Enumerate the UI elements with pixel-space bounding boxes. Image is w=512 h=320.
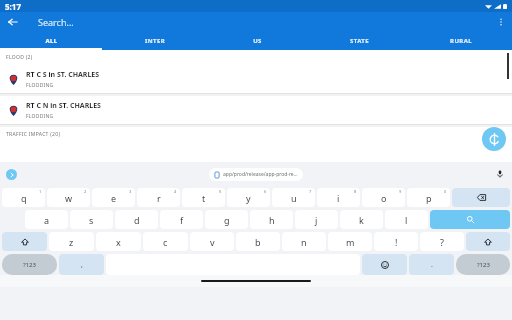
staticText: FLOOD (2) bbox=[6, 54, 33, 61]
staticText: o bbox=[381, 192, 387, 204]
staticText: 0 bbox=[444, 189, 447, 194]
staticText: y bbox=[246, 192, 251, 204]
staticText: TRAFFIC IMPACT (20) bbox=[6, 131, 61, 138]
staticText: 6 bbox=[264, 189, 267, 194]
staticText: 3 bbox=[129, 189, 132, 194]
staticText: x bbox=[116, 236, 121, 248]
staticText: ? bbox=[440, 236, 444, 248]
staticText: l bbox=[405, 214, 408, 226]
button[interactable]: Back bbox=[4, 13, 22, 31]
staticText: e bbox=[111, 192, 117, 204]
button[interactable]: z bbox=[49, 232, 94, 251]
staticText: u bbox=[291, 192, 297, 204]
button[interactable]: RT C S in ST. CHARLES bbox=[0, 65, 512, 93]
button[interactable]: ? bbox=[420, 232, 464, 251]
button[interactable] bbox=[2, 232, 47, 251]
button[interactable]: p bbox=[407, 188, 450, 207]
staticText: m bbox=[346, 236, 355, 248]
button[interactable]: More options bbox=[493, 14, 509, 30]
button[interactable]: w bbox=[47, 188, 90, 207]
button[interactable]: d bbox=[115, 210, 158, 229]
button[interactable]: ! bbox=[374, 232, 418, 251]
staticText: FLOODING bbox=[26, 113, 54, 120]
staticText: ?123 bbox=[477, 261, 490, 269]
button[interactable]: , bbox=[59, 254, 104, 275]
staticText: 5:17 bbox=[5, 1, 21, 12]
staticText: 9 bbox=[399, 189, 402, 194]
button[interactable] bbox=[430, 210, 510, 229]
button[interactable]: ALL bbox=[0, 32, 103, 50]
staticText: US bbox=[253, 37, 262, 45]
button[interactable]: Refresh bbox=[482, 127, 506, 151]
button[interactable]: Voice input bbox=[494, 168, 506, 180]
button[interactable]: x bbox=[96, 232, 141, 251]
button[interactable]: RT C N in ST. CHARLES bbox=[0, 96, 512, 124]
button[interactable]: g bbox=[205, 210, 248, 229]
staticText: INTER bbox=[145, 37, 165, 45]
staticText: p bbox=[426, 192, 432, 204]
staticText: ALL bbox=[45, 37, 58, 45]
button[interactable]: y bbox=[227, 188, 270, 207]
staticText: s bbox=[89, 214, 94, 226]
button[interactable]: e bbox=[92, 188, 135, 207]
staticText: RURAL bbox=[450, 37, 472, 45]
button[interactable]: Home bbox=[201, 280, 311, 282]
button[interactable]: US bbox=[206, 32, 308, 50]
button[interactable]: app/prod/release/app-prod-re... bbox=[209, 168, 303, 181]
button[interactable]: RURAL bbox=[410, 32, 512, 50]
button[interactable]: l bbox=[385, 210, 428, 229]
staticText: z bbox=[69, 236, 74, 248]
staticText: , bbox=[81, 260, 83, 270]
staticText: v bbox=[210, 236, 215, 248]
staticText: ?123 bbox=[23, 261, 36, 269]
button[interactable]: r bbox=[137, 188, 180, 207]
staticText: 7 bbox=[309, 189, 312, 194]
button[interactable]: b bbox=[236, 232, 280, 251]
staticText: r bbox=[157, 192, 161, 204]
button[interactable]: n bbox=[282, 232, 326, 251]
button[interactable]: STATE bbox=[308, 32, 410, 50]
staticText: . bbox=[431, 260, 433, 270]
staticText: a bbox=[44, 214, 50, 226]
staticText: f bbox=[180, 214, 184, 226]
button[interactable] bbox=[362, 254, 407, 275]
button[interactable]: v bbox=[190, 232, 234, 251]
staticText: q bbox=[21, 192, 27, 204]
staticText: 1 bbox=[39, 189, 42, 194]
staticText: c bbox=[163, 236, 168, 248]
button[interactable]: c bbox=[143, 232, 188, 251]
button[interactable]: INTER bbox=[103, 32, 206, 50]
staticText: 2 bbox=[84, 189, 87, 194]
button[interactable]: h bbox=[250, 210, 293, 229]
staticText: 4 bbox=[174, 189, 177, 194]
staticText: RT C S in ST. CHARLES bbox=[26, 70, 100, 80]
staticText: 8 bbox=[354, 189, 357, 194]
staticText: 5 bbox=[219, 189, 222, 194]
button[interactable]: Expand suggestions bbox=[6, 169, 17, 180]
staticText: STATE bbox=[350, 37, 369, 45]
button[interactable]: i bbox=[317, 188, 360, 207]
staticText: j bbox=[315, 214, 318, 226]
button[interactable] bbox=[466, 232, 510, 251]
button[interactable]: k bbox=[340, 210, 383, 229]
button[interactable]: o bbox=[362, 188, 405, 207]
button[interactable]: f bbox=[160, 210, 203, 229]
button[interactable]: t bbox=[182, 188, 225, 207]
button[interactable]: u bbox=[272, 188, 315, 207]
staticText: FLOODING bbox=[26, 82, 54, 89]
button[interactable]: a bbox=[25, 210, 68, 229]
button[interactable]: s bbox=[70, 210, 113, 229]
staticText: RT C N in ST. CHARLES bbox=[26, 101, 101, 111]
button[interactable]: j bbox=[295, 210, 338, 229]
staticText: k bbox=[359, 214, 364, 226]
staticText: n bbox=[301, 236, 307, 248]
button[interactable] bbox=[452, 188, 510, 207]
button[interactable]: m bbox=[328, 232, 372, 251]
button[interactable]: ?123 bbox=[456, 254, 510, 275]
button[interactable]: q bbox=[2, 188, 45, 207]
button[interactable]: . bbox=[409, 254, 454, 275]
button[interactable]: ?123 bbox=[2, 254, 57, 275]
staticText: w bbox=[65, 192, 73, 204]
staticText: b bbox=[255, 236, 261, 248]
